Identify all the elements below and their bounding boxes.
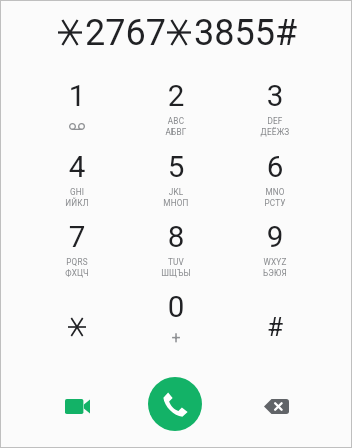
button[interactable]: 6 [226,138,324,208]
staticText: 9 [226,220,324,255]
button[interactable]: 9 [226,208,324,278]
staticText: РСТУ [226,198,324,208]
staticText: 2767 [85,12,166,54]
staticText: JKL [127,187,225,197]
staticText: МНОП [127,198,225,208]
button[interactable] [28,278,126,348]
staticText: 2 [127,79,225,114]
button[interactable]: 3 [226,67,324,137]
button[interactable]: 1 [28,67,126,137]
button[interactable]: 0 [127,278,225,348]
staticText: АБВГ [127,127,225,137]
staticText: ЬЭЮЯ [226,268,324,278]
staticText: 0 [127,290,225,325]
staticText: 1 [28,79,126,114]
button[interactable]: 4 [28,138,126,208]
button[interactable]: 7 [28,208,126,278]
staticText: MNO [226,187,324,197]
staticText: 3855# [194,12,298,54]
staticText: 4 [28,150,126,185]
staticText: ИЙКЛ [28,198,126,208]
staticText: 5 [127,150,225,185]
staticText: 6 [226,150,324,185]
button[interactable]: Backspace [240,376,312,436]
button[interactable]: 2 [127,67,225,137]
button[interactable]: # [226,278,324,348]
staticText: 3 [226,79,324,114]
staticText: WXYZ [226,257,324,267]
staticText: ABC [127,116,225,126]
staticText: 7 [28,220,126,255]
staticText: ФХЦЧ [28,268,126,278]
staticText: ДЕЁЖЗ [226,127,324,137]
button[interactable]: Video call [41,376,113,436]
staticText: GHI [28,187,126,197]
staticText: DEF [226,116,324,126]
staticText: TUV [127,257,225,267]
staticText: PQRS [28,257,126,267]
button[interactable]: 8 [127,208,225,278]
staticText: # [226,312,324,343]
button[interactable]: 5 [127,138,225,208]
button[interactable]: Call [148,377,202,431]
staticText: + [127,328,225,347]
staticText: 8 [127,220,225,255]
staticText: ШЩЪЫ [127,268,225,278]
